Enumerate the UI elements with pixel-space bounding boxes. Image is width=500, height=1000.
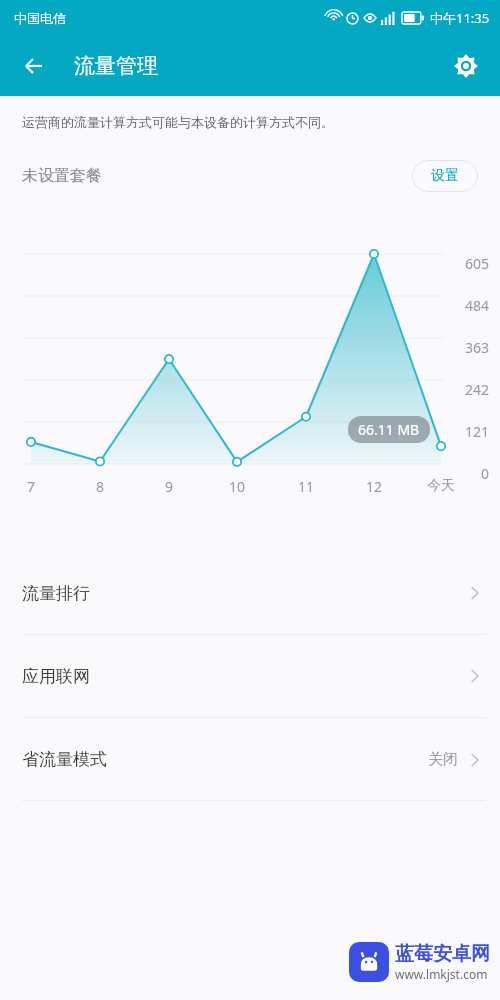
staticText: 流量管理 (74, 53, 158, 79)
staticText: 0 (481, 464, 490, 483)
staticText: 今天 (421, 477, 461, 495)
staticText: 中午11:35 (430, 9, 490, 27)
staticText: www.lmkjst.com (395, 966, 488, 982)
button[interactable]: 设置 (412, 160, 478, 192)
staticText: 关闭 (428, 750, 458, 769)
staticText: 10 (217, 477, 257, 496)
staticText: 7 (11, 477, 51, 496)
staticText: 未设置套餐 (22, 166, 102, 186)
staticText: 363 (465, 338, 490, 357)
staticText: 省流量模式 (22, 749, 107, 770)
button[interactable]: Back (14, 46, 54, 86)
staticText: 蓝莓安卓网 (395, 942, 490, 966)
staticText: 8 (80, 477, 120, 496)
staticText: 484 (465, 296, 490, 315)
staticText: 中国电信 (14, 10, 66, 26)
button[interactable]: 应用联网 (0, 635, 500, 717)
staticText: 9 (149, 477, 189, 496)
button[interactable]: Settings (444, 44, 488, 88)
staticText: 121 (465, 422, 490, 441)
staticText: 11 (286, 477, 326, 496)
staticText: 242 (465, 380, 490, 399)
staticText: 流量排行 (22, 583, 90, 604)
button[interactable]: 流量排行 (0, 552, 500, 634)
staticText: 12 (354, 477, 394, 496)
button[interactable]: 省流量模式 (0, 718, 500, 800)
staticText: 应用联网 (22, 666, 90, 687)
staticText: 设置 (431, 167, 459, 185)
staticText: 运营商的流量计算方式可能与本设备的计算方式不同。 (22, 114, 334, 130)
staticText: 66.11 MB (358, 420, 420, 439)
staticText: 605 (465, 254, 490, 273)
